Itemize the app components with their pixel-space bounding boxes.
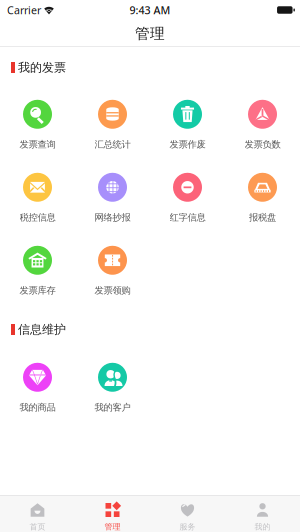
staticText: 报税盘 [249,212,276,223]
button[interactable]: 发票领购 [75,247,150,295]
button[interactable]: 汇总统计 [75,101,150,149]
staticText: 9:43 AM [129,3,170,17]
staticText: 首页 [29,522,45,532]
button[interactable]: 发票库存 [0,247,75,295]
staticText: 信息维护 [18,322,66,337]
staticText: 发票库存 [19,285,55,296]
staticText: 我的 [254,522,270,532]
staticText: 红字信息 [169,212,205,223]
button[interactable]: 网络抄报 [75,174,150,222]
staticText: 服务 [179,522,195,532]
button[interactable]: 服务 [150,495,225,532]
staticText: 我的发票 [18,60,66,75]
staticText: 发票作废 [169,139,205,150]
button[interactable]: 报税盘 [225,174,300,222]
button[interactable]: 发票查询 [0,101,75,149]
staticText: 我的客户 [94,402,130,413]
staticText: 发票负数 [244,139,280,150]
staticText: 管理 [104,522,120,532]
button[interactable]: 税控信息 [0,174,75,222]
staticText: 发票查询 [19,139,55,150]
button[interactable]: 发票作废 [150,101,225,149]
staticText: Carrier [7,3,41,17]
staticText: 税控信息 [19,212,55,223]
button[interactable]: 红字信息 [150,174,225,222]
staticText: 管理 [135,24,165,42]
button[interactable]: 我的 [225,495,300,532]
button[interactable]: 发票负数 [225,101,300,149]
button[interactable]: 管理 [75,495,150,532]
staticText: 我的商品 [19,402,55,413]
staticText: 网络抄报 [94,212,130,223]
button[interactable]: 我的客户 [75,364,150,412]
staticText: 汇总统计 [94,139,130,150]
staticText: 发票领购 [94,285,130,296]
button[interactable]: 首页 [0,495,75,532]
button[interactable]: 我的商品 [0,364,75,412]
